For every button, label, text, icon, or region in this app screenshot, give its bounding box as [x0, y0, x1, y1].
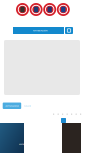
button[interactable]: Lorem ipsum dolor sit [4, 123, 57, 153]
button[interactable]: NAVEGACIÓN [13, 27, 64, 34]
staticText: SALUD [10, 99, 45, 113]
staticText: ACTUALIDAD [0, 99, 46, 113]
button[interactable]: ACTUALIDAD [3, 102, 21, 109]
staticText: NAVEGACIÓN [4, 23, 76, 38]
button[interactable]: SALUD [22, 102, 32, 109]
button[interactable]: Menu [65, 27, 73, 34]
staticText: Lorem ipsum dolor sit [0, 137, 85, 151]
